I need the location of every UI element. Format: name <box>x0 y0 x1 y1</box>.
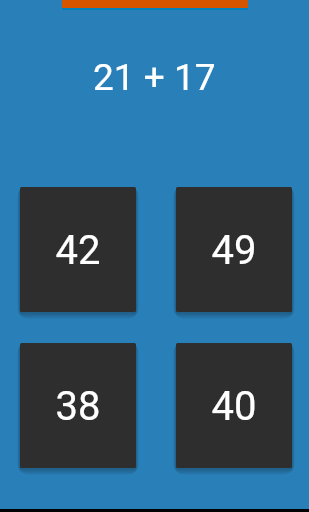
button[interactable]: 42 <box>20 187 136 312</box>
button[interactable]: 49 <box>176 187 292 312</box>
other: Time remaining <box>0 0 309 10</box>
button[interactable]: 40 <box>176 343 292 468</box>
other: 21 + 17 <box>0 0 309 100</box>
button[interactable]: 38 <box>20 343 136 468</box>
